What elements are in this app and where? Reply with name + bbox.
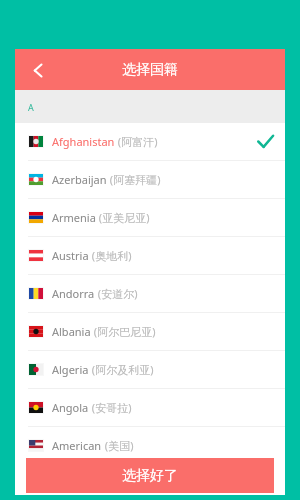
staticText: Azerbaijan — [52, 172, 107, 187]
staticText: (安哥拉) — [89, 400, 132, 415]
staticText: Austria — [52, 248, 89, 263]
staticText: Andorra — [52, 286, 95, 301]
staticText: (美国) — [102, 438, 134, 453]
staticText: Angola — [52, 400, 89, 415]
staticText: American — [52, 438, 102, 453]
button[interactable]: Austria — [15, 237, 285, 274]
button[interactable]: American — [15, 427, 285, 464]
button[interactable]: Andorra — [15, 275, 285, 312]
staticText: (阿塞拜疆) — [107, 172, 161, 187]
staticText: Armenia — [52, 210, 96, 225]
staticText: Albania — [52, 324, 91, 339]
button[interactable]: 选择好了 — [26, 458, 274, 493]
button[interactable]: Back — [23, 55, 53, 85]
button[interactable]: Azerbaijan — [15, 161, 285, 198]
button[interactable]: Afghanistan — [15, 123, 285, 160]
staticText: (阿富汗) — [115, 134, 158, 149]
staticText: Afghanistan — [52, 134, 115, 149]
staticText: (阿尔巴尼亚) — [91, 324, 156, 339]
button[interactable]: Albania — [15, 313, 285, 350]
staticText: 选择国籍 — [122, 61, 178, 79]
staticText: Algeria — [52, 362, 89, 377]
staticText: (阿尔及利亚) — [89, 362, 154, 377]
staticText: 选择好了 — [122, 467, 178, 485]
button[interactable]: Armenia — [15, 199, 285, 236]
staticText: A — [28, 101, 34, 113]
button[interactable]: Angola — [15, 389, 285, 426]
staticText: (安道尔) — [95, 286, 138, 301]
staticText: (奥地利) — [89, 248, 132, 263]
button[interactable]: Algeria — [15, 351, 285, 388]
staticText: (亚美尼亚) — [96, 210, 150, 225]
